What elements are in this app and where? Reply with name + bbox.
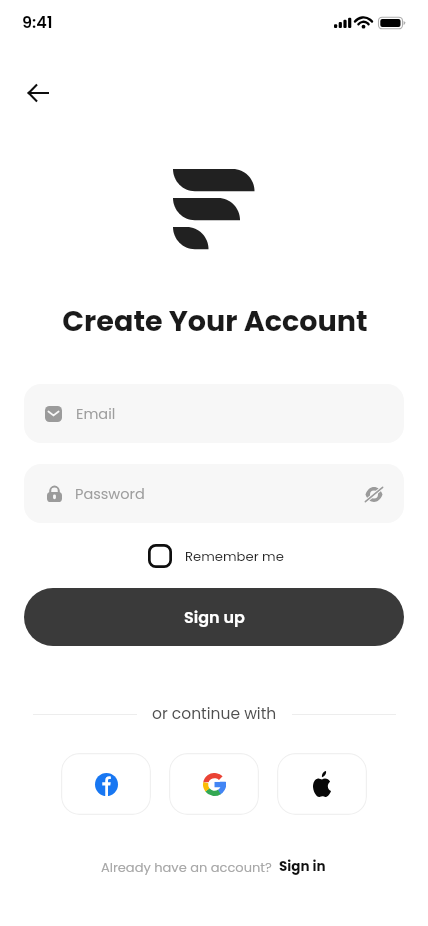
staticText: Password — [75, 484, 145, 504]
button[interactable]: Email — [24, 384, 404, 443]
staticText: Already have an account? — [101, 858, 272, 876]
staticText: Email — [76, 404, 116, 424]
button[interactable]: Sign up — [24, 588, 404, 646]
staticText: Sign up — [184, 606, 245, 628]
button[interactable]: Back — [14, 69, 62, 117]
staticText: Remember me — [185, 547, 284, 565]
button[interactable]: Remember me — [144, 539, 288, 573]
button[interactable]: Sign up with Apple — [277, 753, 367, 815]
button[interactable]: Show password — [361, 481, 387, 507]
button[interactable]: Sign up with Google — [169, 753, 259, 815]
staticText: Create Your Account — [62, 301, 368, 341]
button[interactable]: Sign in — [277, 853, 328, 880]
staticText: 9:41 — [22, 11, 53, 33]
staticText: or continue with — [152, 703, 277, 725]
button[interactable]: Sign up with Facebook — [61, 753, 151, 815]
staticText: Sign in — [279, 857, 326, 876]
button[interactable]: Password — [24, 464, 404, 523]
